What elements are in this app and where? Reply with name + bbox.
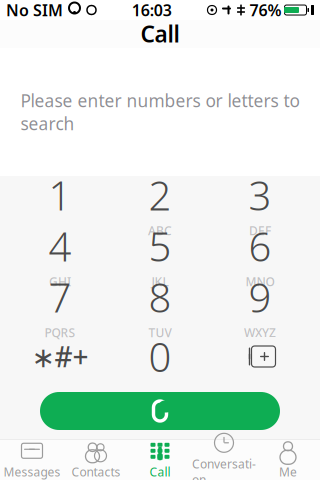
staticText: TUV xyxy=(148,325,171,340)
button[interactable]: Call xyxy=(40,392,280,430)
staticText: JKL xyxy=(151,274,168,289)
button[interactable]: 3 xyxy=(210,178,310,229)
staticText: 8 xyxy=(148,270,171,324)
staticText: Please enter numbers or letters to searc… xyxy=(20,89,299,135)
button[interactable]: 6 xyxy=(210,229,310,280)
button[interactable]: 2 xyxy=(110,178,210,229)
button[interactable]: 4 xyxy=(10,229,110,280)
staticText: 6 xyxy=(248,219,271,273)
staticText: 76% xyxy=(249,0,281,21)
staticText: ABC xyxy=(148,223,172,238)
staticText: 5 xyxy=(148,219,171,273)
staticText: Contacts xyxy=(71,464,120,480)
button[interactable]: 0 xyxy=(110,331,210,382)
button[interactable]: Me xyxy=(256,440,320,480)
staticText: 7 xyxy=(48,270,71,324)
button[interactable]: 1 xyxy=(10,178,110,229)
staticText: Call xyxy=(140,19,179,49)
button[interactable]: 5 xyxy=(110,229,210,280)
button[interactable]: ∗#+ xyxy=(10,331,110,382)
staticText: 16:03 xyxy=(132,0,172,21)
staticText: Call xyxy=(149,464,170,480)
staticText: 3 xyxy=(248,168,271,222)
button[interactable]: Delete xyxy=(210,331,310,382)
staticText: 1 xyxy=(48,168,71,222)
staticText: Me xyxy=(279,464,297,480)
button[interactable]: 9 xyxy=(210,280,310,331)
staticText: DEF xyxy=(249,223,271,238)
button[interactable]: 8 xyxy=(110,280,210,331)
button[interactable]: Messages xyxy=(0,440,64,480)
staticText: No SIM xyxy=(6,0,63,21)
button[interactable]: Conversation xyxy=(192,440,256,480)
staticText: 0 xyxy=(148,330,171,383)
staticText: 9 xyxy=(248,270,271,324)
staticText: MNO xyxy=(245,274,274,289)
button[interactable]: Contacts xyxy=(64,440,128,480)
staticText: 2 xyxy=(148,168,171,222)
staticText: PQRS xyxy=(44,325,75,340)
button[interactable]: 7 xyxy=(10,280,110,331)
staticText: 4 xyxy=(48,219,71,273)
staticText: GHI xyxy=(49,274,71,289)
staticText: WXYZ xyxy=(244,325,276,340)
staticText: ∗#+ xyxy=(31,338,88,375)
button[interactable]: Call xyxy=(128,440,192,480)
staticText: Messages xyxy=(3,464,60,480)
staticText: Conversation xyxy=(192,456,256,480)
